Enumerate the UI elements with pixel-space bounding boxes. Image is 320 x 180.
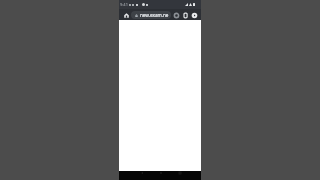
button[interactable]: Search or type web address bbox=[131, 11, 171, 19]
staticText: 9:41 bbox=[120, 2, 128, 7]
button[interactable]: Switch tabs bbox=[181, 11, 189, 19]
button[interactable]: Recent apps bbox=[175, 171, 184, 180]
button[interactable]: More options bbox=[190, 11, 198, 19]
button[interactable]: Reload page bbox=[172, 11, 180, 19]
button[interactable]: Back bbox=[137, 171, 146, 180]
staticText: new.exam.net bbox=[140, 12, 169, 18]
button[interactable]: Home bbox=[122, 11, 130, 19]
button[interactable]: Home bbox=[156, 171, 165, 180]
